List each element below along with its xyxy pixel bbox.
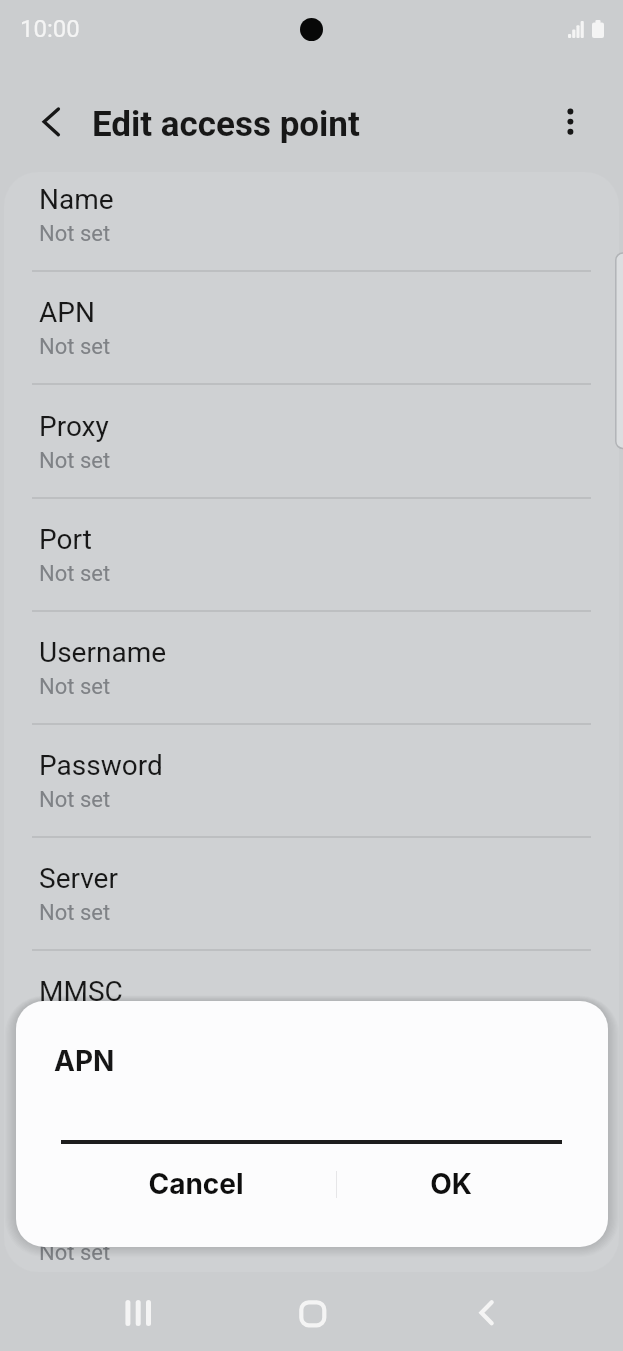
button[interactable]: Server (4, 836, 619, 949)
button[interactable]: Proxy (4, 384, 619, 497)
staticText: Not set (39, 674, 111, 700)
staticText: OK (430, 1167, 472, 1201)
button[interactable]: Home (287, 1288, 337, 1338)
staticText: Port (39, 523, 92, 556)
button[interactable]: Navigate up (26, 97, 76, 147)
staticText: Proxy (39, 410, 109, 443)
button[interactable]: More options (546, 97, 596, 147)
button[interactable]: Password (4, 723, 619, 836)
staticText: Not set (39, 561, 111, 587)
staticText: Not set (39, 1240, 111, 1266)
staticText: Username (39, 636, 167, 669)
staticText: Not set (39, 1127, 111, 1153)
staticText: Not set (39, 900, 111, 926)
staticText: Name (39, 183, 114, 216)
button[interactable]: MMSC (4, 949, 619, 1062)
staticText: Not set (39, 334, 111, 360)
staticText: Server (39, 862, 118, 895)
button[interactable]: Port (4, 497, 619, 610)
button[interactable]: Name (4, 172, 619, 270)
staticText: 10:00 (20, 15, 80, 43)
staticText: Cancel (148, 1167, 244, 1201)
button[interactable]: Username (4, 610, 619, 723)
button[interactable]: APN (4, 270, 619, 383)
staticText: Not set (39, 787, 111, 813)
button[interactable]: Back (461, 1288, 511, 1338)
staticText: APN (39, 296, 95, 329)
button[interactable]: MMS proxy (4, 1063, 619, 1176)
staticText: Not set (39, 448, 111, 474)
staticText: MMSC (39, 975, 123, 1008)
button[interactable]: OK (337, 1150, 608, 1218)
button[interactable]: MMS port (4, 1176, 619, 1272)
staticText: Edit access point (92, 104, 360, 145)
button[interactable]: Cancel (16, 1150, 336, 1218)
staticText: Not set (39, 221, 111, 247)
button[interactable]: Recent apps (113, 1288, 163, 1338)
staticText: Password (39, 749, 163, 782)
staticText: APN (54, 1044, 115, 1078)
